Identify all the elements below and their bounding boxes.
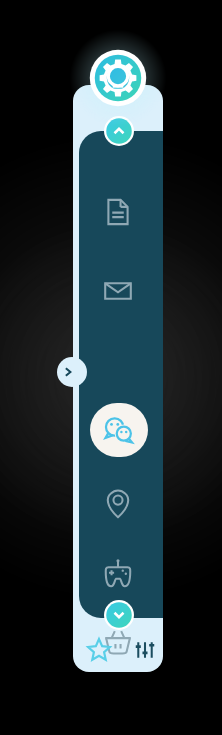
button[interactable]: Scroll down bbox=[104, 600, 134, 630]
button[interactable]: Shopping basket bbox=[102, 626, 134, 658]
button[interactable]: Location bbox=[103, 489, 133, 519]
button[interactable]: Games bbox=[101, 555, 135, 589]
button[interactable]: Mail bbox=[102, 275, 134, 307]
button[interactable]: Settings sliders bbox=[130, 635, 160, 665]
button[interactable]: Expand drawer bbox=[57, 357, 87, 387]
button[interactable] bbox=[90, 403, 148, 457]
button[interactable]: Favorites bbox=[84, 635, 114, 665]
button[interactable]: Scroll up bbox=[104, 116, 134, 146]
button[interactable]: Documents bbox=[102, 196, 134, 228]
button[interactable]: Smart settings bbox=[87, 47, 149, 109]
